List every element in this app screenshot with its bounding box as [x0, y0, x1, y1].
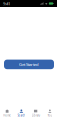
- button[interactable]: Search: [14, 104, 28, 117]
- staticText: 9:41: [3, 1, 10, 6]
- button[interactable]: Home: [0, 104, 14, 117]
- button[interactable]: Get Started: [4, 60, 54, 69]
- staticText: Search: [17, 114, 25, 117]
- staticText: Library: [32, 114, 40, 117]
- button[interactable]: You: [43, 104, 57, 117]
- staticText: You: [47, 114, 52, 117]
- staticText: Get Started: [19, 62, 39, 67]
- button[interactable]: Library: [28, 104, 43, 117]
- staticText: Home: [3, 114, 11, 117]
